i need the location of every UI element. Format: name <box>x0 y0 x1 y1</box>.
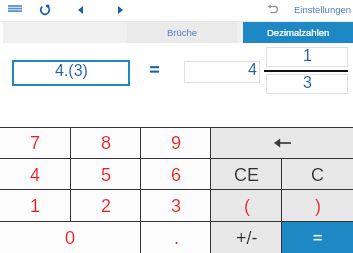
button[interactable]: ) <box>282 190 353 222</box>
staticText: 1 <box>30 196 41 216</box>
staticText: CE <box>234 165 260 185</box>
button[interactable]: . <box>141 222 212 253</box>
staticText: ( <box>244 196 250 216</box>
staticText: ) <box>315 196 321 216</box>
staticText: = <box>313 229 323 247</box>
staticText: Einstellungen <box>294 4 352 15</box>
button[interactable]: 4 <box>0 159 71 191</box>
button[interactable]: Undo <box>263 0 283 19</box>
staticText: 8 <box>101 133 112 153</box>
button[interactable]: 4 <box>184 61 260 83</box>
staticText: 5 <box>101 165 112 185</box>
button[interactable]: 0 <box>0 222 141 253</box>
staticText: 1 <box>303 47 312 64</box>
button[interactable]: 4.(3) <box>12 60 130 86</box>
button[interactable]: Forward <box>109 0 132 19</box>
staticText: 4 <box>30 165 41 185</box>
button[interactable]: +/- <box>211 222 282 253</box>
button[interactable]: Menu <box>1 0 28 18</box>
staticText: 6 <box>171 165 182 185</box>
button[interactable]: Back <box>69 0 92 19</box>
button[interactable]: CE <box>211 159 282 191</box>
staticText: 4.(3) <box>55 62 88 80</box>
staticText: 0 <box>65 228 76 248</box>
staticText: 9 <box>171 133 182 153</box>
button[interactable]: = <box>282 222 353 253</box>
staticText: Dezimalzahlen <box>267 27 330 38</box>
staticText: 7 <box>30 133 41 153</box>
button[interactable]: 5 <box>71 159 141 191</box>
button[interactable]: Brüche <box>127 22 237 43</box>
button[interactable]: 9 <box>141 127 212 159</box>
button[interactable]: Backspace <box>211 127 353 159</box>
button[interactable]: 3 <box>141 190 212 222</box>
button[interactable]: 7 <box>0 127 71 159</box>
staticText: 3 <box>303 74 312 91</box>
staticText: 4 <box>248 61 257 78</box>
staticText: 2 <box>101 196 112 216</box>
button[interactable]: ( <box>211 190 282 222</box>
staticText: +/- <box>236 228 258 248</box>
button[interactable]: Einstellungen <box>292 0 353 19</box>
button[interactable]: Refresh <box>33 0 57 19</box>
button[interactable]: 8 <box>71 127 141 159</box>
staticText: 3 <box>171 196 182 216</box>
button[interactable]: Dezimalzahlen <box>243 22 353 43</box>
button[interactable]: 1 <box>266 47 348 67</box>
button[interactable]: C <box>282 159 353 191</box>
staticText: Brüche <box>167 27 198 38</box>
button[interactable]: 1 <box>0 190 71 222</box>
button[interactable]: 2 <box>71 190 141 222</box>
staticText: . <box>174 228 180 248</box>
button[interactable]: 6 <box>141 159 212 191</box>
button[interactable]: 3 <box>266 74 348 94</box>
staticText: C <box>311 165 324 185</box>
